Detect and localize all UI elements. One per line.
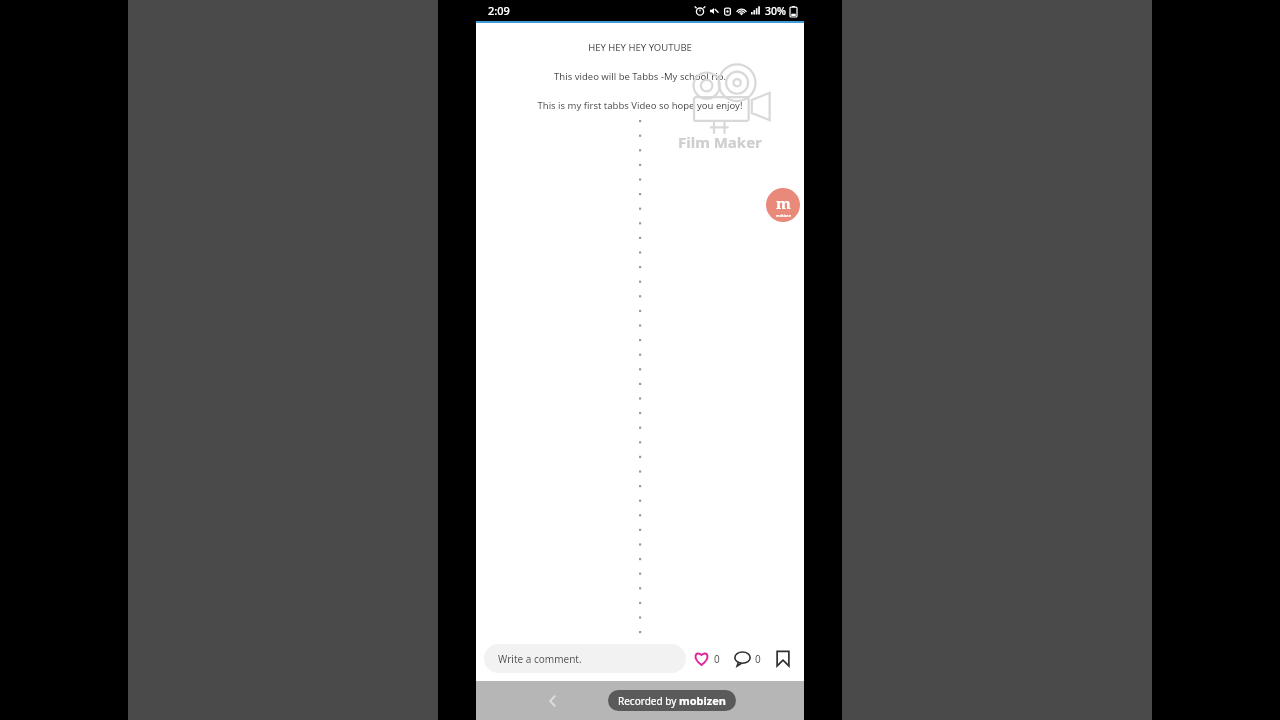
button[interactable]: Save bbox=[768, 650, 796, 667]
staticText: mobizen bbox=[679, 693, 726, 708]
staticText: 0 bbox=[714, 652, 720, 666]
button[interactable]: Comment bbox=[727, 650, 768, 667]
staticText: mobizen bbox=[776, 213, 791, 218]
staticText: 30% bbox=[765, 4, 786, 18]
staticText: Recorded by bbox=[618, 694, 679, 708]
other: Save bbox=[776, 650, 790, 667]
button[interactable]: Like bbox=[686, 650, 727, 667]
staticText: Film Maker bbox=[678, 132, 762, 152]
other: Comment bbox=[734, 650, 751, 667]
staticText: This is my first tabbs Video so hope you… bbox=[476, 99, 804, 112]
button[interactable]: Write a comment. bbox=[484, 644, 686, 673]
other: Like bbox=[693, 650, 710, 667]
staticText: 2:09 bbox=[488, 3, 510, 18]
staticText: HEY HEY HEY YOUTUBE bbox=[476, 41, 804, 54]
staticText: 0 bbox=[755, 652, 761, 666]
staticText: Write a comment. bbox=[498, 652, 582, 666]
staticText: m bbox=[776, 193, 791, 213]
button[interactable]: Back bbox=[536, 684, 570, 718]
staticText: This video will be Tabbs -My school rio. bbox=[476, 70, 804, 83]
